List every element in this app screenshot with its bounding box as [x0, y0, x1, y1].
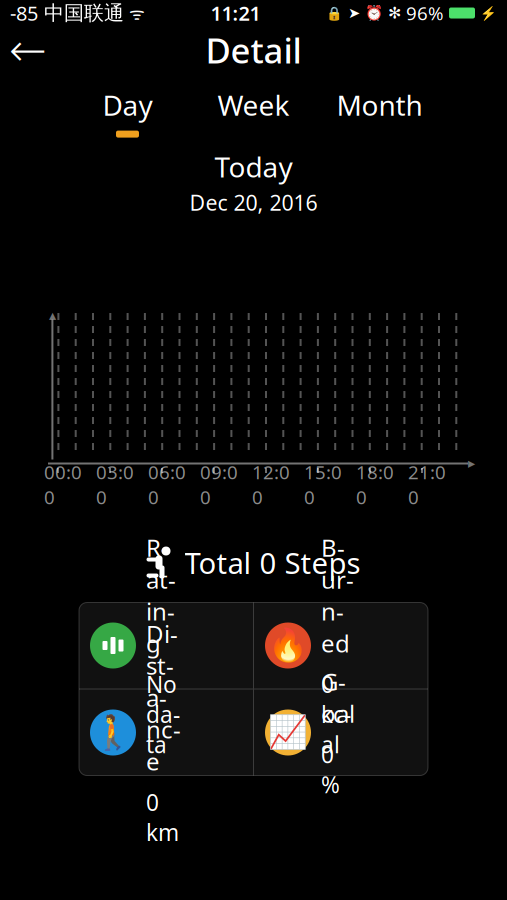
staticText: ▶ [468, 458, 475, 469]
staticText: 15:00 [304, 460, 342, 509]
staticText: 18:00 [356, 460, 394, 509]
staticText: Rating [146, 532, 176, 659]
staticText: ← [9, 24, 47, 76]
staticText: ➤ [348, 5, 360, 21]
staticText: Month [336, 86, 422, 124]
staticText: ✻ [388, 4, 401, 22]
staticText: 09:00 [200, 460, 238, 509]
button[interactable]: Back [0, 28, 56, 72]
button[interactable]: Day [64, 86, 190, 138]
staticText: Total 0 Steps [184, 543, 360, 582]
staticText: -85 [10, 0, 38, 26]
staticText: Goal [321, 665, 355, 729]
staticText: 📈 [268, 714, 308, 751]
staticText: 03:00 [96, 460, 134, 509]
staticText: 06:00 [148, 460, 186, 509]
staticText: 00:00 [44, 460, 82, 509]
staticText: Distance [146, 618, 181, 777]
staticText: Week [217, 86, 289, 124]
staticText: 🚶 [92, 713, 134, 752]
button[interactable]: Month [316, 86, 442, 138]
staticText: 96% [406, 1, 444, 25]
button[interactable]: 🚶 [79, 689, 253, 775]
staticText: 0 kcal [321, 669, 351, 759]
staticText: 🔥 [268, 627, 308, 664]
button[interactable]: 🔥 [254, 602, 428, 688]
staticText: 11:21 [210, 0, 260, 26]
button[interactable]: Total 0 Steps [138, 540, 368, 584]
staticText: Day [102, 86, 152, 124]
button[interactable]: 📈 [254, 689, 428, 775]
button[interactable]: Rating [79, 602, 253, 688]
staticText: Burned [321, 532, 354, 659]
staticText: Dec 20, 2016 [189, 188, 317, 216]
staticText: 🔒 [326, 5, 343, 21]
staticText: 0 km [146, 787, 179, 847]
staticText: Detail [205, 27, 301, 73]
staticText: ⚡ [480, 5, 497, 21]
staticText: ⏰ [365, 5, 383, 21]
button[interactable]: Week [190, 86, 316, 138]
staticText: 0 % [321, 739, 340, 799]
staticText: ᯤ [124, 1, 145, 24]
staticText: 21:00 [408, 460, 446, 509]
staticText: 12:00 [252, 460, 290, 509]
staticText: 中国联通 [38, 1, 124, 25]
staticText: ▲ [49, 310, 56, 321]
staticText: Today [214, 148, 292, 185]
staticText: No data [146, 669, 180, 759]
